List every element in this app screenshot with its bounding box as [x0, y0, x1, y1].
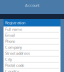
- staticText: Country: [5, 68, 19, 72]
- button[interactable]: Phone: [5, 38, 59, 44]
- staticText: Account: [25, 2, 39, 8]
- button[interactable]: Email: [5, 32, 59, 38]
- staticText: Postal code: [5, 62, 24, 68]
- staticText: Email: [5, 32, 15, 38]
- button[interactable]: Company: [5, 44, 59, 50]
- staticText: Registration: [5, 20, 25, 25]
- staticText: Phone: [5, 38, 15, 44]
- button[interactable]: Country: [5, 68, 59, 72]
- staticText: Street address: [5, 50, 30, 56]
- button[interactable]: Full name: [5, 26, 59, 32]
- button[interactable]: Postal code: [5, 62, 59, 68]
- staticText: Full name: [5, 26, 22, 32]
- staticText: City: [5, 56, 12, 62]
- button[interactable]: Street address: [5, 50, 59, 56]
- button[interactable]: City: [5, 56, 59, 62]
- staticText: Company: [5, 44, 22, 50]
